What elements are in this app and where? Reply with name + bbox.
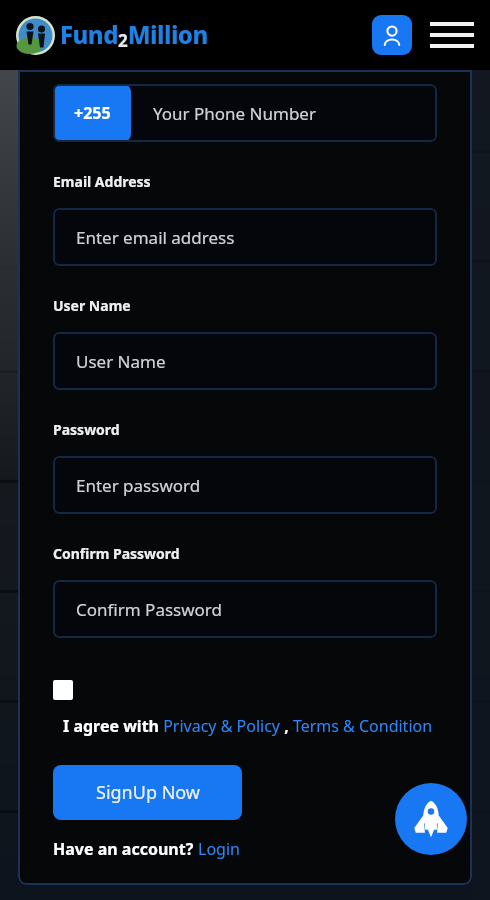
staticText: Password (53, 420, 120, 439)
button[interactable] (372, 15, 412, 55)
staticText: SignUp Now (96, 780, 200, 805)
staticText: +255 (74, 102, 111, 124)
staticText: Email Address (53, 172, 151, 191)
button[interactable]: Enter email address (53, 208, 437, 266)
staticText: Confirm Password (53, 544, 180, 563)
staticText: Confirm Password (76, 598, 222, 621)
staticText: Login (198, 838, 240, 860)
staticText: Fund2Million (60, 18, 208, 52)
button[interactable]: Enter password (53, 456, 437, 514)
staticText: User Name (53, 296, 131, 315)
button[interactable]: Confirm Password (53, 580, 437, 638)
button[interactable]: +255 (53, 84, 437, 142)
button[interactable]: SignUp Now (53, 765, 242, 820)
button[interactable] (53, 680, 73, 700)
staticText: User Name (76, 350, 166, 373)
staticText: Enter email address (76, 226, 235, 249)
staticText: Enter password (76, 474, 201, 497)
button[interactable]: Have an account? (53, 838, 240, 860)
staticText: Have an account? (53, 838, 198, 860)
button[interactable] (395, 783, 467, 855)
button[interactable]: I agree with Privacy & Policy , Terms & … (63, 715, 433, 737)
button[interactable]: User Name (53, 332, 437, 390)
button[interactable] (430, 22, 474, 48)
staticText: Your Phone Number (153, 102, 316, 125)
